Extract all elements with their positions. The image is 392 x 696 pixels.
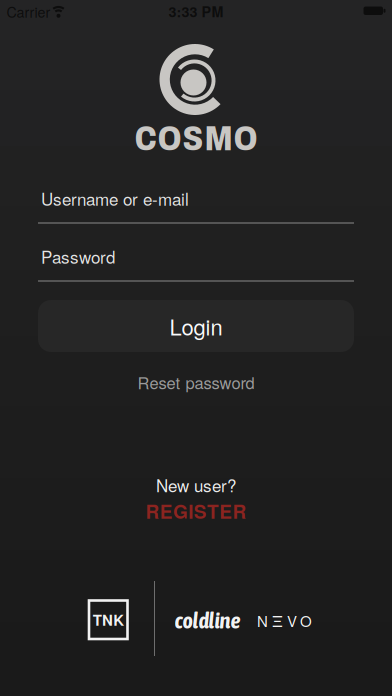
- staticText: NΞVO: [257, 610, 312, 631]
- staticText: Username or e-mail: [41, 186, 189, 210]
- button[interactable]: Login: [38, 300, 354, 352]
- staticText: REGISTER: [145, 497, 247, 525]
- staticText: New user?: [156, 473, 236, 497]
- staticText: 3:33 PM: [168, 1, 223, 22]
- staticText: coldline: [174, 608, 240, 633]
- staticText: Carrier: [6, 1, 50, 22]
- staticText: Password: [41, 244, 115, 268]
- staticText: TNK: [93, 609, 124, 630]
- button[interactable]: Reset password: [137, 370, 254, 394]
- button[interactable]: REGISTER: [145, 497, 247, 525]
- staticText: Login: [169, 310, 222, 342]
- staticText: COSMO: [134, 119, 257, 158]
- staticText: Reset password: [137, 370, 254, 394]
- button[interactable]: Password: [38, 241, 354, 281]
- button[interactable]: Username or e-mail: [38, 183, 354, 223]
